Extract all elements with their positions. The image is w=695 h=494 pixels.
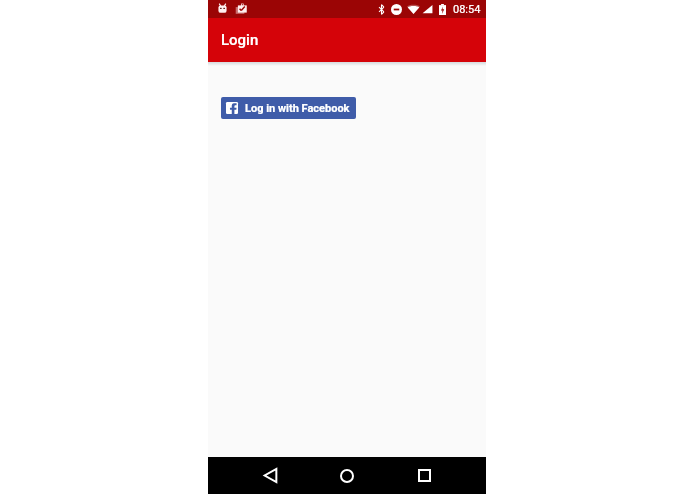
staticText: Login	[221, 31, 259, 49]
button[interactable]: Back	[246, 457, 294, 494]
staticText: Log in with Facebook	[245, 102, 350, 115]
staticText: 08:54	[453, 3, 481, 16]
button[interactable]: Log in with Facebook	[221, 97, 356, 119]
button[interactable]: Recents	[400, 457, 448, 494]
button[interactable]: Home	[323, 457, 371, 494]
